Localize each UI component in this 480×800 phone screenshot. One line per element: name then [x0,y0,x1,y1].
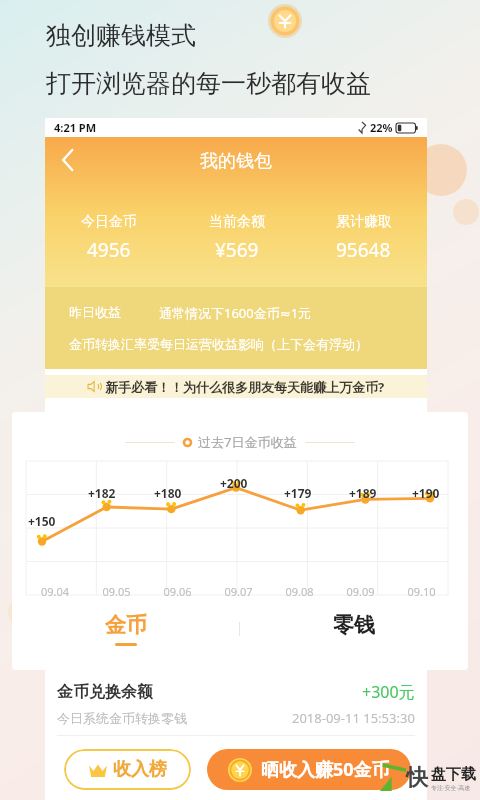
staticText: 4:21 PM [54,120,97,135]
staticText: 新手必看！！为什么很多朋友每天能赚上万金币? [105,378,385,396]
staticText: +190 [412,485,440,501]
staticText: 金币 [105,612,147,638]
staticText: +179 [284,485,312,501]
staticText: 金币兑换余额 [57,682,153,702]
staticText: 今日金币 [81,213,137,231]
button[interactable]: 晒收入赚50金币 [207,749,411,790]
staticText: 累计赚取 [336,213,392,231]
staticText: 专注·安全·高速 [431,784,471,792]
button[interactable]: 新手必看！！为什么很多朋友每天能赚上万金币? [45,375,427,398]
staticText: ¥569 [215,237,259,263]
button[interactable]: 金币兑换余额 [45,672,427,736]
staticText: 09.07 [208,584,269,599]
staticText: 4956 [87,237,131,263]
staticText: 22% [370,120,393,135]
staticText: 打开浏览器的每一秒都有收益 [46,68,371,99]
staticText: +189 [349,485,377,501]
staticText: 金币转换汇率受每日运营收益影响（上下会有浮动） [69,336,368,352]
staticText: +182 [88,485,116,501]
button[interactable]: Back [45,137,91,183]
button[interactable]: 收入榜 [64,749,191,790]
staticText: 快 [406,764,428,792]
staticText: 过去7日金币收益 [198,433,297,451]
staticText: 09.10 [391,584,452,599]
staticText: 95648 [336,237,391,263]
button[interactable]: 零钱 [240,601,468,657]
staticText: 昨日收益 [69,304,121,320]
staticText: 今日系统金币转换零钱 [57,710,187,726]
staticText: 我的钱包 [200,150,272,173]
staticText: 今日系统金币转换零钱 [57,774,187,790]
staticText: 09.05 [86,584,147,599]
staticText: 金币兑换余额 [57,746,153,766]
staticText: 通常情况下1600金币≈1元 [159,304,312,322]
staticText: 09.08 [269,584,330,599]
staticText: 当前余额 [209,213,265,231]
staticText: 09.06 [147,584,208,599]
staticText: 2018-09-11 15:53:30 [292,773,415,791]
staticText: 盘下载 [431,765,476,784]
staticText: 09.04 [24,584,86,599]
staticText: +180 [154,485,182,501]
staticText: 09.09 [330,584,391,599]
staticText: +300元 [362,681,415,703]
staticText: +300元 [362,745,415,767]
staticText: 零钱 [333,612,375,638]
staticText: 2018-09-11 15:53:30 [292,709,415,727]
staticText: 独创赚钱模式 [46,20,196,51]
staticText: +150 [28,513,56,529]
staticText: 收入榜 [113,758,167,781]
button[interactable]: 金币兑换余额 [45,736,427,800]
staticText: 晒收入赚50金币 [261,757,390,782]
staticText: +200 [220,475,248,491]
button[interactable]: 金币 [12,601,239,657]
